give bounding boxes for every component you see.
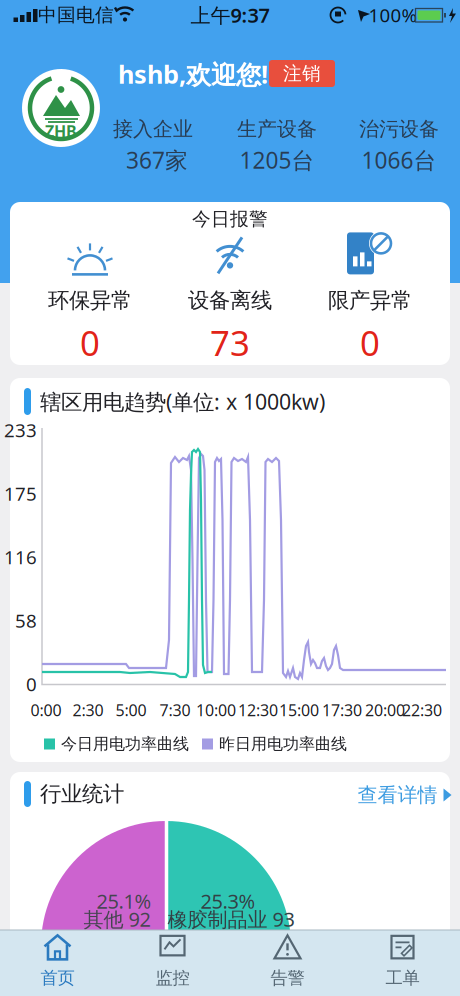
staticText: 58 xyxy=(15,608,37,633)
button[interactable]: 限产异常 xyxy=(328,230,412,366)
staticText: ZHB xyxy=(45,120,77,142)
staticText: 监控 xyxy=(155,967,189,989)
button[interactable]: 告警 xyxy=(230,930,345,992)
staticText: 175 xyxy=(4,481,37,506)
button[interactable]: 首页 xyxy=(0,930,115,992)
staticText: 告警 xyxy=(270,967,304,989)
button[interactable]: 环保异常 xyxy=(48,230,132,366)
staticText: 环保异常 xyxy=(48,287,132,314)
staticText: 0 xyxy=(360,320,380,366)
staticText: hshb,欢迎您! xyxy=(118,57,268,91)
staticText: 中国电信 xyxy=(38,3,114,26)
staticText: 限产异常 xyxy=(328,287,412,314)
staticText: 0:00 xyxy=(30,699,61,721)
staticText: 查看详情 xyxy=(357,783,437,807)
staticText: 5:00 xyxy=(115,699,146,721)
button[interactable]: 注销 xyxy=(269,60,335,87)
staticText: 工单 xyxy=(385,967,419,989)
staticText: 接入企业 xyxy=(113,117,193,141)
staticText: 73 xyxy=(210,320,250,366)
staticText: 1205台 xyxy=(239,145,314,175)
staticText: 注销 xyxy=(283,62,321,85)
staticText: 2:30 xyxy=(72,699,103,721)
staticText: 0 xyxy=(80,320,100,366)
staticText: 生产设备 xyxy=(237,117,317,141)
staticText: 辖区用电趋势(单位: x 1000kw) xyxy=(40,387,325,416)
staticText: 233 xyxy=(4,418,37,442)
staticText: 15:00 xyxy=(279,699,319,721)
staticText: 7:30 xyxy=(159,699,190,721)
staticText: 其他 92 xyxy=(83,906,150,932)
button[interactable]: 监控 xyxy=(115,930,230,992)
staticText: 橡胶制品业 93 xyxy=(167,906,294,932)
button[interactable]: 工单 xyxy=(345,930,460,992)
staticText: 0 xyxy=(26,672,37,696)
staticText: 25.3% xyxy=(200,888,255,914)
staticText: 10:00 xyxy=(196,699,236,721)
staticText: 20:00 xyxy=(365,699,405,721)
staticText: 116 xyxy=(4,545,37,569)
button[interactable]: 查看详情 xyxy=(357,783,452,807)
staticText: 今日用电功率曲线 xyxy=(61,734,189,754)
staticText: 昨日用电功率曲线 xyxy=(219,734,347,754)
staticText: 367家 xyxy=(126,145,188,175)
staticText: 1066台 xyxy=(361,145,436,175)
staticText: 22:30 xyxy=(402,699,442,721)
staticText: 25.1% xyxy=(96,888,151,914)
staticText: 12:30 xyxy=(238,699,278,721)
staticText: 行业统计 xyxy=(40,781,124,807)
staticText: 上午9:37 xyxy=(190,2,269,28)
staticText: 100% xyxy=(368,3,417,27)
button[interactable]: 设备离线 xyxy=(188,230,272,366)
staticText: 设备离线 xyxy=(188,287,272,314)
staticText: 治污设备 xyxy=(359,117,439,141)
staticText: 17:30 xyxy=(322,699,362,721)
staticText: 首页 xyxy=(40,967,74,989)
staticText: 今日报警 xyxy=(192,207,268,230)
